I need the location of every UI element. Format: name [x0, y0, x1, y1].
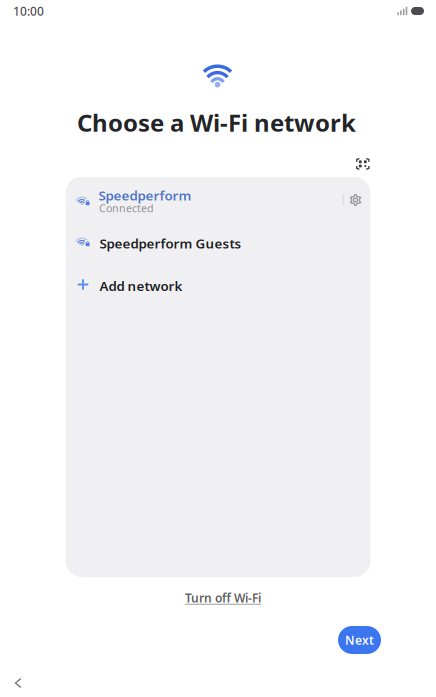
button[interactable]: Speedperform Guests: [66, 222, 370, 260]
button[interactable]: Scan QR code: [345, 147, 371, 173]
button[interactable]: Speedperform: [66, 177, 370, 222]
staticText: Connected: [99, 201, 154, 215]
staticText: Speedperform Guests: [99, 234, 241, 252]
staticText: Next: [345, 632, 374, 648]
button[interactable]: Next: [338, 626, 381, 654]
staticText: 10:00: [13, 3, 44, 19]
staticText: Choose a Wi-Fi network: [77, 106, 356, 138]
button[interactable]: Add network: [66, 260, 370, 298]
button[interactable]: Back: [4, 669, 32, 697]
staticText: Speedperform: [98, 186, 191, 204]
staticText: Add network: [99, 277, 182, 295]
staticText: Turn off Wi-Fi: [185, 590, 261, 606]
button[interactable]: Turn off Wi-Fi: [180, 586, 266, 610]
